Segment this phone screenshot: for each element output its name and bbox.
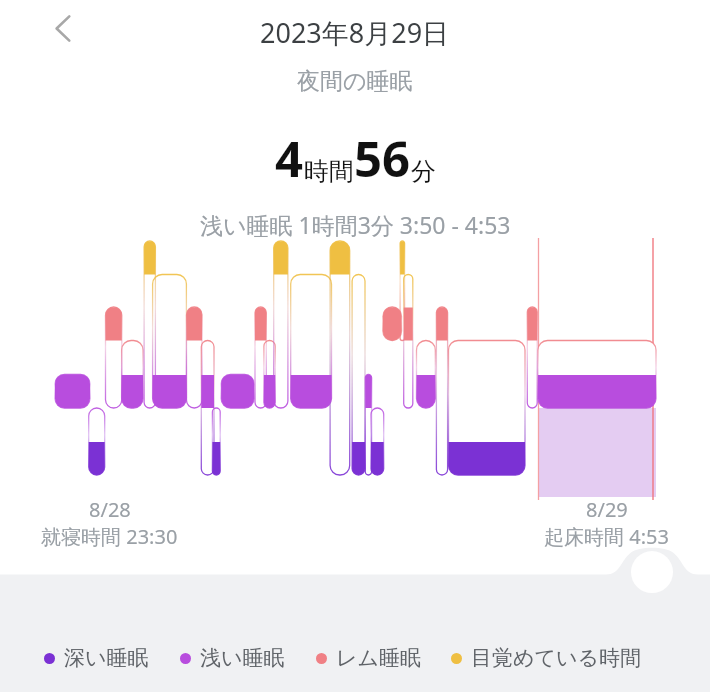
staticText: 夜間の睡眠 [297, 67, 413, 96]
staticText: 起床時間 4:53 [544, 523, 669, 550]
staticText: 56 [354, 125, 411, 192]
staticText: 分 [411, 156, 436, 187]
button[interactable]: レム睡眠 [316, 645, 421, 671]
staticText: 就寝時間 23:30 [41, 523, 178, 550]
staticText: 浅い睡眠 [200, 645, 285, 671]
staticText: 深い睡眠 [64, 645, 149, 671]
staticText: レム睡眠 [336, 645, 421, 671]
staticText: 目覚めている時間 [471, 645, 641, 671]
button[interactable]: Back [44, 6, 88, 50]
staticText: 浅い睡眠 1時間3分 3:50 - 4:53 [200, 209, 511, 240]
staticText: 2023年8月29日 [260, 14, 450, 51]
staticText: 8/28 [89, 496, 131, 523]
button[interactable]: 深い睡眠 [44, 645, 149, 671]
staticText: 8/29 [586, 496, 628, 523]
staticText: 4 [275, 125, 304, 192]
button[interactable]: 目覚めている時間 [451, 645, 641, 671]
button[interactable]: 浅い睡眠 [180, 645, 285, 671]
staticText: 時間 [304, 156, 354, 187]
